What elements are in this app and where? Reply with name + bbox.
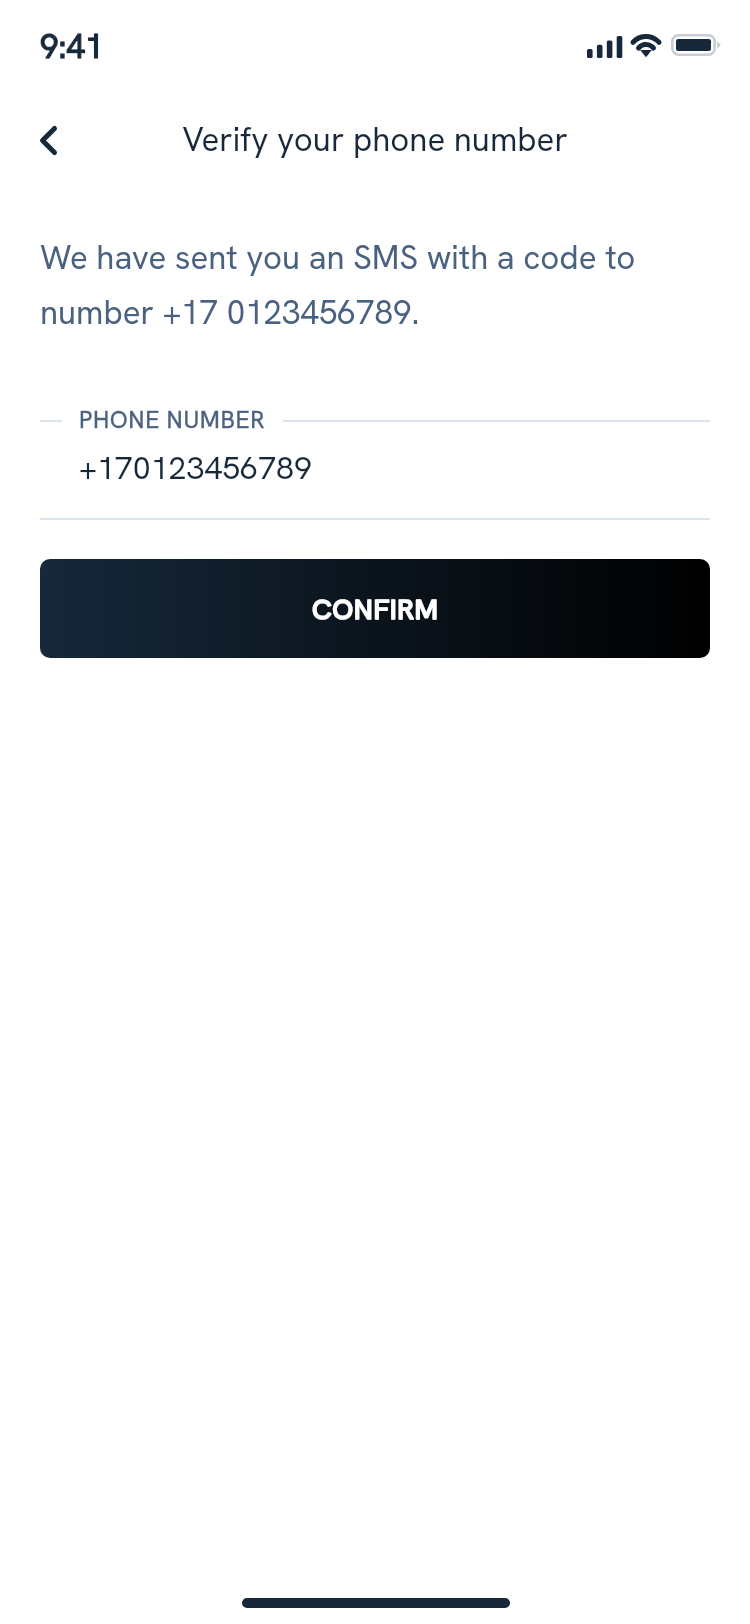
button[interactable]: CONFIRM <box>40 559 710 658</box>
button[interactable]: PHONE NUMBER <box>40 404 710 520</box>
staticText: +170123456789 <box>79 447 312 489</box>
staticText: 9:41 <box>40 25 104 68</box>
staticText: PHONE NUMBER <box>79 404 266 435</box>
staticText: We have sent you an SMS with a code to n… <box>40 236 680 334</box>
staticText: Verify your phone number <box>182 118 568 161</box>
staticText: 9:41 <box>40 25 104 68</box>
staticText: CONFIRM <box>312 591 439 627</box>
button[interactable]: Back <box>18 110 78 170</box>
staticText: CONFIRM <box>312 591 439 627</box>
staticText: PHONE NUMBER <box>79 404 266 435</box>
